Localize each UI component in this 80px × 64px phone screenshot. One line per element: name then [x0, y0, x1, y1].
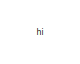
staticText: hi	[36, 27, 43, 37]
